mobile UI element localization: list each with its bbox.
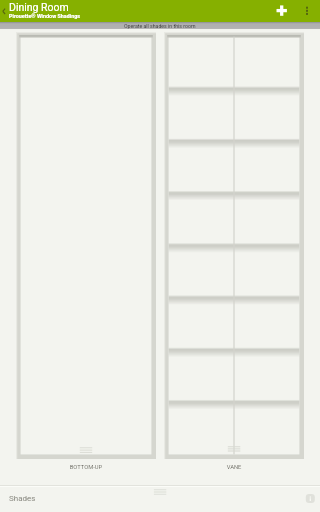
staticText: Operate all shades in this room [124, 23, 196, 29]
staticText: Pirouette® Window Shadings [9, 13, 80, 19]
button[interactable]: Operate all shades in this room [0, 22, 320, 29]
staticText: VANE [164, 464, 304, 471]
button[interactable]: BOTTOM-UP [16, 32, 156, 472]
button[interactable]: Info [303, 491, 318, 506]
button[interactable]: More options [300, 1, 316, 21]
button[interactable]: Back [0, 4, 9, 18]
button[interactable]: VANE [164, 32, 304, 472]
button[interactable]: Shades [0, 485, 320, 512]
button[interactable]: Add shade [272, 1, 292, 21]
staticText: BOTTOM-UP [16, 464, 156, 471]
staticText: Shades [9, 494, 36, 503]
staticText: Dining Room [9, 1, 69, 13]
